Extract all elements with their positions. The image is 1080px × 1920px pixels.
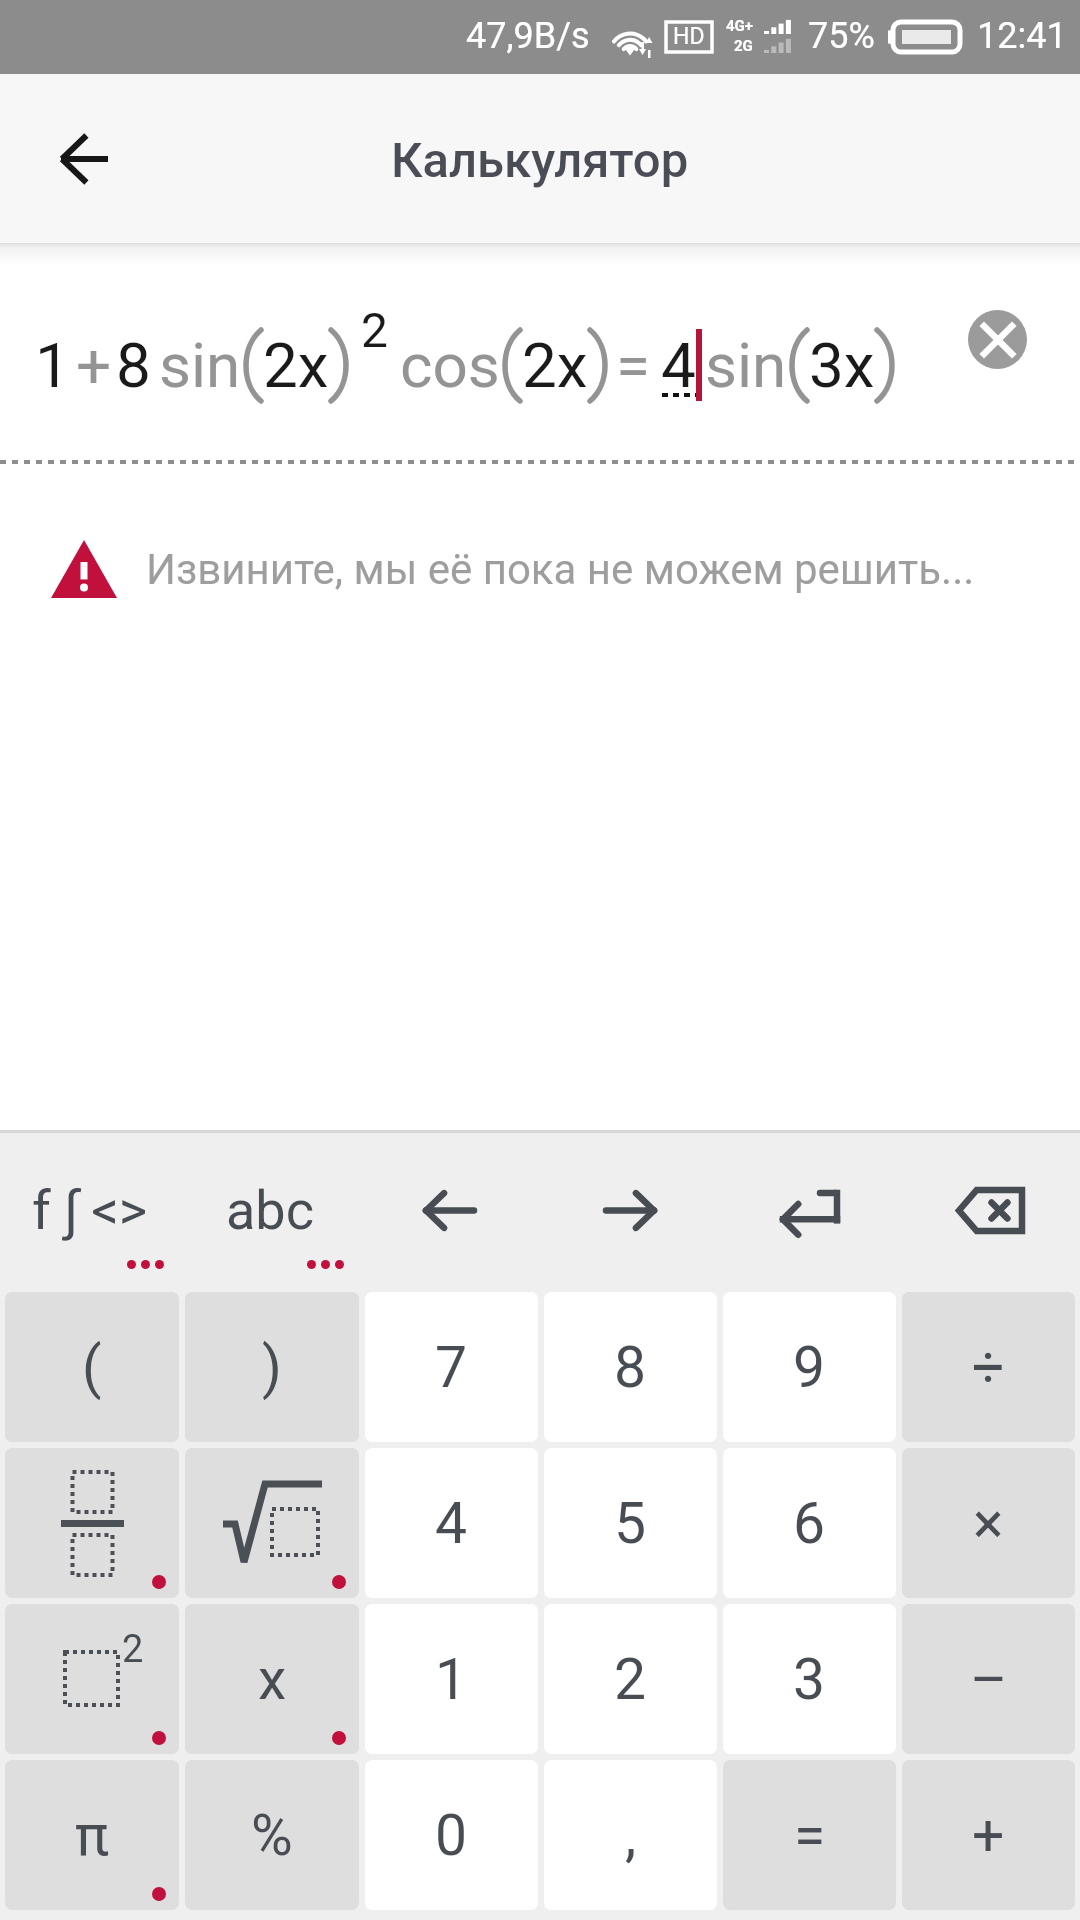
button[interactable]: x <box>185 1604 359 1754</box>
staticText: ( <box>82 1334 102 1401</box>
button[interactable]: Enter <box>720 1133 900 1292</box>
staticText: + <box>76 329 112 402</box>
staticText: π <box>75 1802 109 1869</box>
button[interactable]: π <box>5 1760 179 1910</box>
button[interactable]: % <box>185 1760 359 1910</box>
button[interactable]: 3 <box>723 1604 896 1754</box>
staticText: % <box>251 1802 293 1869</box>
staticText: 7 <box>435 1334 468 1401</box>
staticText: + <box>972 1802 1005 1869</box>
button[interactable]: Clear <box>968 310 1027 369</box>
button[interactable] <box>5 1448 179 1598</box>
staticText: sin <box>159 329 241 402</box>
staticText: 9 <box>793 1334 826 1401</box>
button[interactable]: Move left <box>360 1133 540 1292</box>
button[interactable]: ( <box>5 1292 179 1442</box>
staticText: 2 <box>614 1646 647 1713</box>
button[interactable]: Backspace <box>900 1133 1080 1292</box>
staticText: abc <box>226 1179 314 1242</box>
staticText: ) <box>262 1334 282 1401</box>
staticText: 3x <box>809 329 875 402</box>
button[interactable]: Back <box>22 99 146 219</box>
staticText: 2x <box>522 329 588 402</box>
button[interactable]: abc <box>180 1133 360 1292</box>
button[interactable]: , <box>544 1760 717 1910</box>
button[interactable]: 5 <box>544 1448 717 1598</box>
staticText: 8 <box>116 329 151 402</box>
button[interactable]: = <box>723 1760 896 1910</box>
staticText: x <box>258 1646 287 1713</box>
button[interactable]: 7 <box>365 1292 538 1442</box>
button[interactable]: Move right <box>540 1133 720 1292</box>
staticText: 0 <box>435 1802 468 1869</box>
staticText: 2G <box>734 37 753 55</box>
button[interactable]: ÷ <box>902 1292 1075 1442</box>
button[interactable] <box>185 1448 359 1598</box>
button[interactable]: ) <box>185 1292 359 1442</box>
button[interactable]: × <box>902 1448 1075 1598</box>
button[interactable]: 2 <box>544 1604 717 1754</box>
button[interactable]: 0 <box>365 1760 538 1910</box>
button[interactable]: 1 <box>365 1604 538 1754</box>
staticText: 1 <box>35 329 70 402</box>
staticText: 3 <box>793 1646 826 1713</box>
staticText: 2 <box>122 1627 144 1672</box>
staticText: 12:41 <box>977 15 1067 57</box>
staticText: 4G+ <box>726 17 754 35</box>
staticText: 75% <box>808 15 875 57</box>
staticText: HD <box>673 23 705 50</box>
staticText: 4 <box>661 329 696 402</box>
button[interactable]: f ∫ <> <box>0 1133 180 1292</box>
staticText: 2x <box>263 329 329 402</box>
button[interactable]: + <box>902 1760 1075 1910</box>
button[interactable]: 9 <box>723 1292 896 1442</box>
staticText: 6 <box>793 1490 826 1557</box>
button[interactable]: 8 <box>544 1292 717 1442</box>
staticText: ÷ <box>972 1334 1005 1401</box>
staticText: × <box>973 1490 1004 1557</box>
button[interactable]: 6 <box>723 1448 896 1598</box>
button[interactable]: – <box>902 1604 1075 1754</box>
staticText: sin <box>705 329 787 402</box>
staticText: 5 <box>614 1490 647 1557</box>
staticText: 1 <box>435 1646 468 1713</box>
staticText: 8 <box>614 1334 647 1401</box>
staticText: 4 <box>435 1490 468 1557</box>
staticText: f ∫ <> <box>32 1179 148 1242</box>
staticText: Калькулятор <box>391 132 689 189</box>
staticText: = <box>616 329 651 402</box>
staticText: = <box>794 1802 826 1869</box>
staticText: Извините, мы её пока не можем решить... <box>146 545 975 594</box>
button[interactable]: 2 <box>5 1604 179 1754</box>
button[interactable]: 4 <box>365 1448 538 1598</box>
staticText: 47,9B/s <box>466 15 590 57</box>
staticText: – <box>970 1646 1008 1713</box>
staticText: cos <box>400 329 500 402</box>
staticText: , <box>625 1802 637 1869</box>
staticText: 2 <box>361 302 388 358</box>
